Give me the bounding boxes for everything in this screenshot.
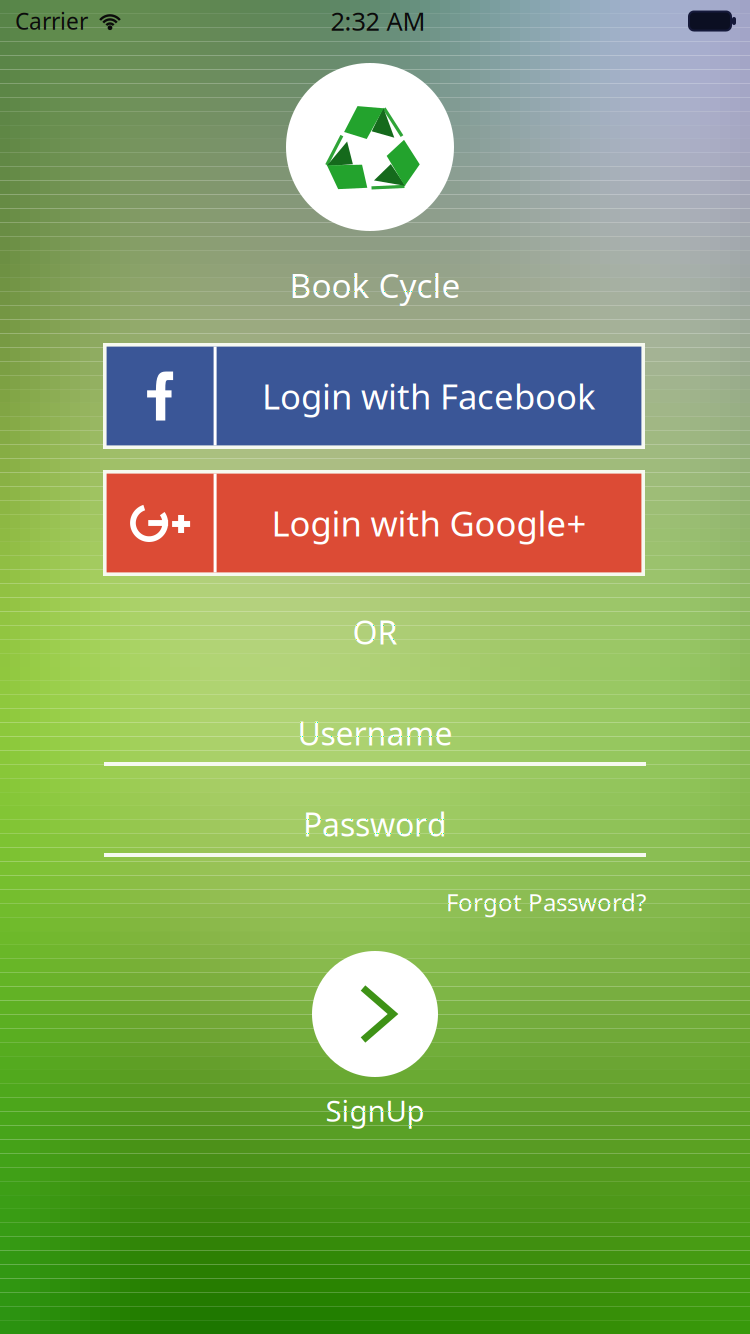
staticText: Forgot Password? — [446, 886, 646, 918]
staticText: Username — [297, 712, 452, 754]
staticText: Login with Facebook — [262, 373, 596, 419]
staticText: 2:32 AM — [330, 4, 425, 38]
button[interactable]: Sign up — [312, 951, 438, 1077]
staticText: SignUp — [325, 1091, 424, 1130]
staticText: Book Cycle — [289, 263, 460, 307]
staticText: Password — [303, 803, 447, 845]
button[interactable]: Login with Google+ — [103, 470, 645, 576]
staticText: OR — [352, 611, 397, 653]
staticText: Login with Google+ — [271, 500, 586, 546]
staticText: Carrier — [15, 6, 88, 36]
button[interactable]: Forgot Password? — [416, 879, 646, 925]
button[interactable]: Login with Facebook — [103, 343, 645, 449]
